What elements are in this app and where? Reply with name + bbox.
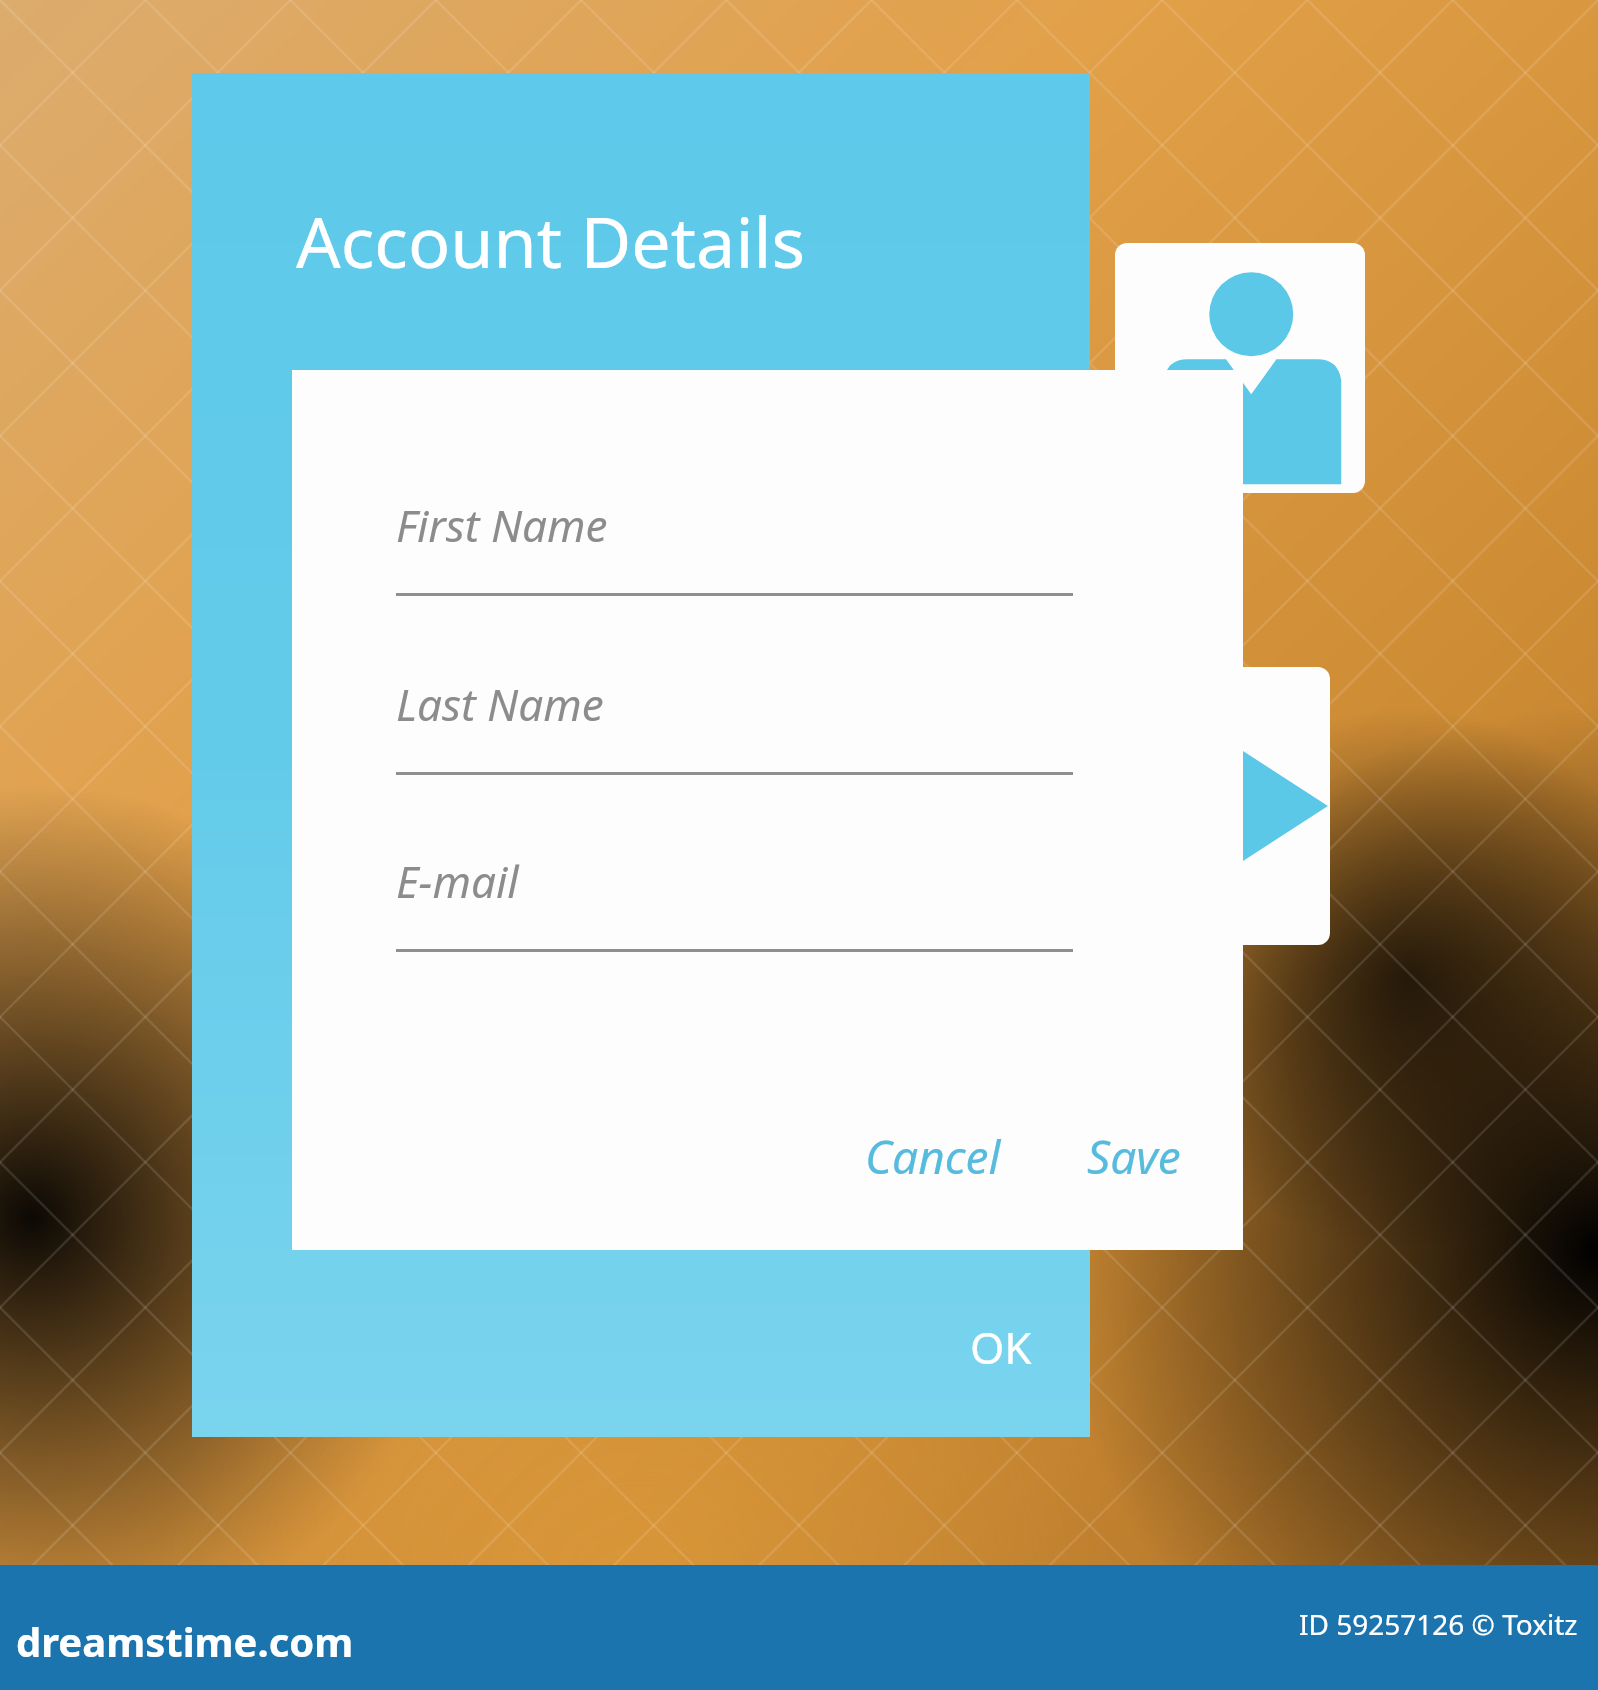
button[interactable]: First Name [292,370,1243,1250]
staticText: ID 59257126 © Toxitz [1299,1605,1578,1643]
button[interactable]: Last Name [396,674,1073,775]
staticText: OK [970,1317,1032,1377]
button[interactable]: Profile picture [1115,243,1365,493]
button[interactable]: Cancel [859,1119,1007,1194]
staticText: Account Details [296,193,806,288]
button[interactable]: Play [1120,667,1330,945]
staticText: First Name [396,495,608,555]
button[interactable]: E-mail [396,851,1073,952]
staticText: Save [1087,1125,1181,1188]
button[interactable]: Save [1081,1119,1187,1194]
button[interactable]: Account Details [192,73,1090,1437]
staticText: dreamstime.com [16,1614,354,1668]
button[interactable]: OK [958,1309,1044,1385]
staticText: Last Name [396,674,604,734]
staticText: Cancel [865,1125,1001,1188]
staticText: E-mail [396,851,519,911]
button[interactable]: First Name [396,495,1073,596]
